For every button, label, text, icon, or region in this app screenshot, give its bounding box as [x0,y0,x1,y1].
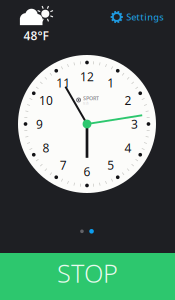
staticText: SPORT [83,95,99,102]
button[interactable]: 48°F [5,5,67,43]
staticText: 9 [36,116,43,132]
staticText: 3 [131,116,138,132]
staticText: 1 [107,75,114,91]
staticText: tech [83,102,89,105]
staticText: STOP [57,256,118,290]
staticText: 5 [107,157,114,173]
staticText: 12 [80,69,94,84]
button[interactable]: STOP [0,253,175,300]
staticText: 2 [125,92,132,108]
staticText: 11 [56,75,70,91]
staticText: 8 [42,140,49,156]
staticText: 7 [60,157,67,173]
staticText: 6 [83,163,90,179]
button[interactable]: Settings [110,5,164,29]
staticText: 4 [125,140,132,156]
staticText: 48°F [23,27,48,43]
staticText: Settings [126,11,164,23]
staticText: 10 [39,92,53,108]
